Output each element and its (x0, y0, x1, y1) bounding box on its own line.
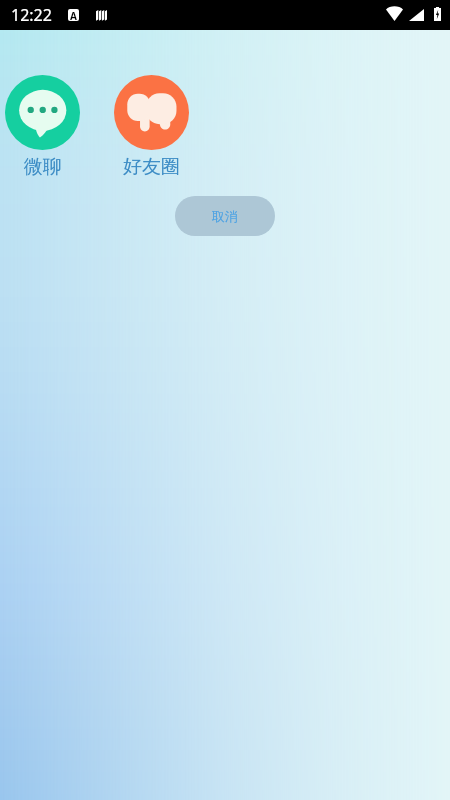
staticText: 取消 (212, 208, 238, 224)
button[interactable]: 好友圈 (114, 75, 189, 179)
staticText: 12:22 (11, 4, 52, 26)
staticText: A (70, 9, 77, 21)
staticText: 微聊 (24, 155, 62, 179)
button[interactable]: 取消 (175, 196, 275, 236)
staticText: 好友圈 (123, 155, 180, 179)
button[interactable]: 微聊 (5, 75, 80, 179)
